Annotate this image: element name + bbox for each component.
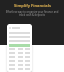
staticText: Effortless way to organize your finance … <box>3 10 61 16</box>
staticText: Simplify Financials <box>14 3 51 8</box>
